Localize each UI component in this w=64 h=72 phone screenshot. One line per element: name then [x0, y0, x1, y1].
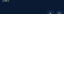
button[interactable]: A — [47, 10, 54, 18]
staticText: B — [58, 11, 61, 17]
button[interactable]: B — [56, 10, 63, 18]
staticText: 9:41 — [2, 0, 9, 2]
staticText: A — [49, 11, 52, 17]
